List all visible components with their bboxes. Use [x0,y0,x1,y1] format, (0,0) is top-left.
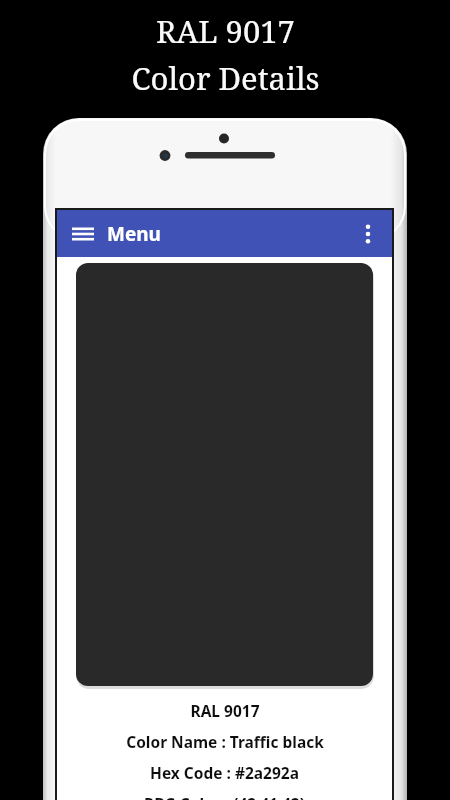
staticText: Color Name : Traffic black [126,731,324,752]
button[interactable]: Open navigation menu [67,218,99,250]
staticText: Menu [107,221,161,247]
staticText: Color Details [131,57,320,99]
staticText: RAL 9017 [156,10,295,52]
button[interactable]: Color swatch Traffic black [76,263,373,686]
button[interactable]: More options [352,218,384,250]
staticText: Hex Code : #2a292a [150,762,299,783]
staticText: RAL 9017 [190,700,260,721]
staticText: RBG Color : (42 41 42) [144,793,305,800]
